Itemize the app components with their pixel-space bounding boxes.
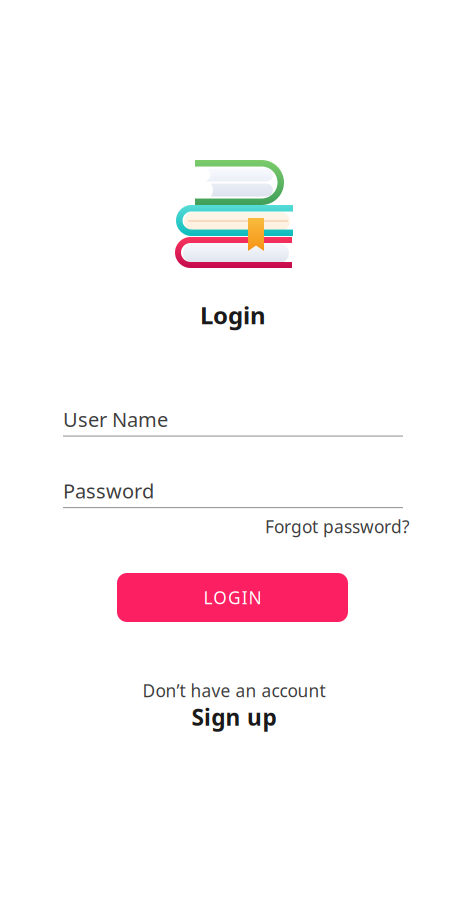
staticText: Sign up	[192, 702, 276, 732]
button[interactable]: User Name	[63, 406, 403, 437]
button[interactable]: Sign up	[192, 702, 276, 732]
staticText: Don’t have an account	[142, 679, 325, 702]
staticText: Login	[200, 299, 266, 331]
button[interactable]: Forgot password?	[265, 515, 410, 538]
staticText: User Name	[63, 406, 168, 433]
button[interactable]: Password	[63, 478, 403, 508]
button[interactable]: LOGIN	[117, 573, 348, 622]
staticText: LOGIN	[203, 586, 262, 609]
staticText: Password	[63, 478, 154, 504]
staticText: Forgot password?	[265, 515, 410, 538]
